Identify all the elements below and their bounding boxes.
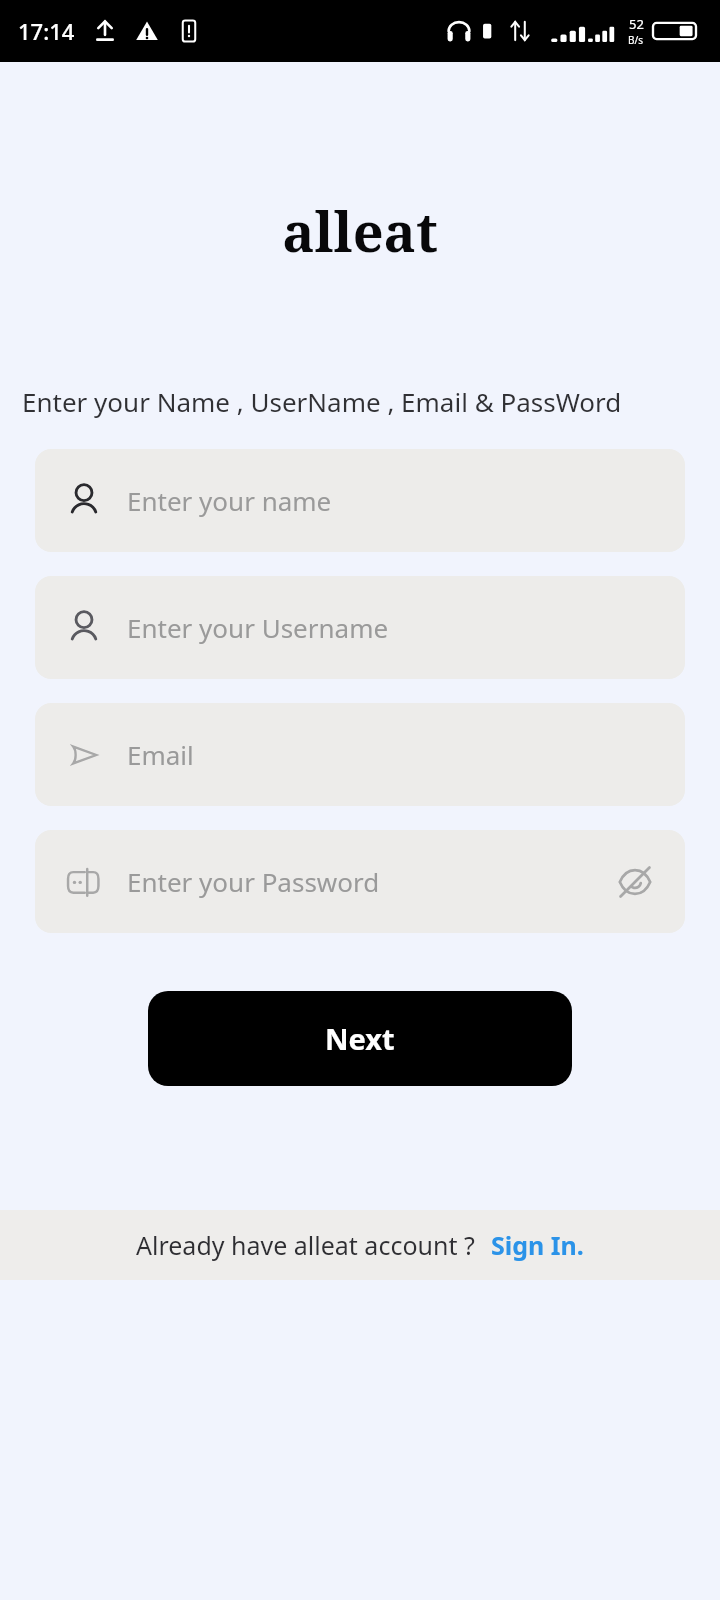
staticText: 17:14	[18, 16, 75, 46]
staticText: Enter your name	[127, 483, 332, 518]
button[interactable]: Enter your Password	[35, 830, 685, 933]
button[interactable]: Enter your Username	[35, 576, 685, 679]
staticText: Enter your Username	[127, 610, 389, 645]
staticText: Enter your Name , UserName , Email & Pas…	[22, 384, 660, 419]
staticText: 52	[629, 15, 644, 33]
staticText: Already have alleat account ?	[136, 1228, 475, 1262]
staticText: Enter your Password	[127, 864, 380, 899]
button[interactable]: Next	[148, 991, 572, 1086]
button[interactable]: Enter your name	[35, 449, 685, 552]
staticText: Email	[127, 737, 194, 772]
staticText: B/s	[628, 33, 644, 47]
staticText: alleat	[0, 194, 720, 268]
staticText: Next	[325, 1019, 395, 1058]
button[interactable]: Already have alleat account ?	[0, 1210, 720, 1280]
button[interactable]: Sign In.	[491, 1228, 584, 1262]
button[interactable]: Show password	[605, 852, 665, 912]
button[interactable]: Email	[35, 703, 685, 806]
